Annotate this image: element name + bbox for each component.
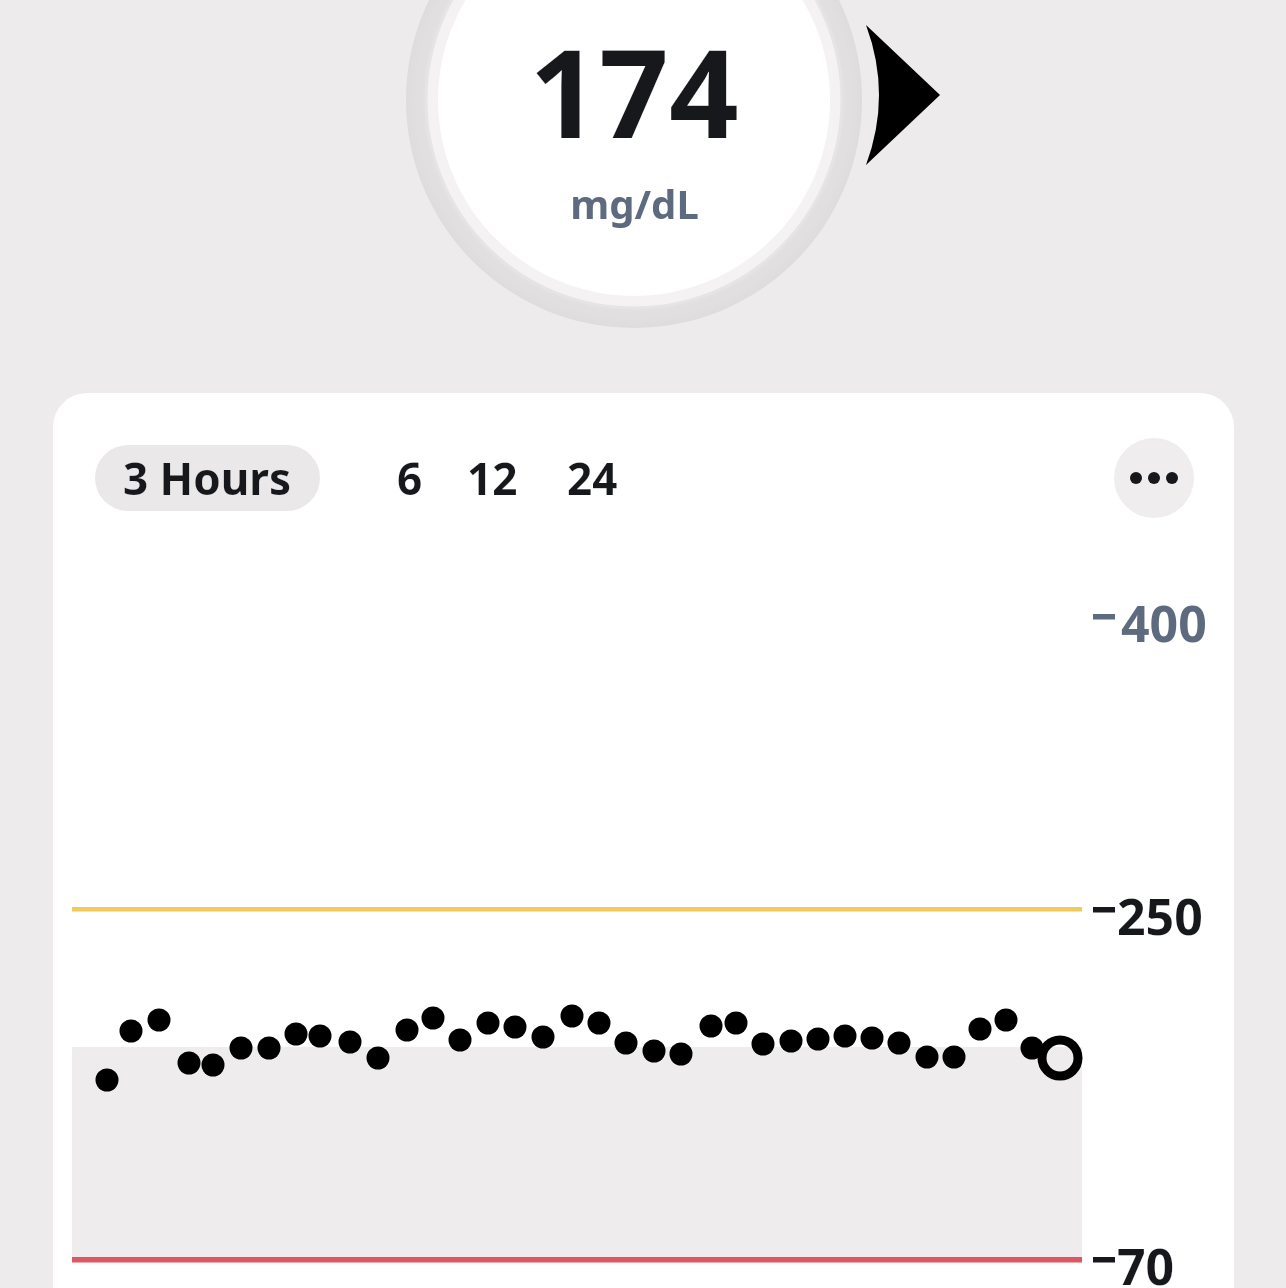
button[interactable]: Glucose 174 mg/dL, rising [434, 8, 834, 230]
staticText: 6 [397, 448, 423, 508]
button[interactable]: More options [1114, 438, 1194, 518]
staticText: 3 Hours [123, 448, 292, 508]
staticText: mg/dL [570, 176, 699, 230]
button[interactable]: 24 [555, 445, 630, 511]
staticText: 174 [529, 8, 739, 174]
staticText: 70 [1117, 1232, 1175, 1288]
button[interactable]: 6 [385, 445, 435, 511]
staticText: 250 [1117, 882, 1203, 950]
staticText: 400 [1121, 589, 1207, 657]
staticText: 12 [467, 448, 518, 508]
staticText: 24 [567, 448, 618, 508]
button[interactable]: 3 Hours [95, 445, 320, 511]
button[interactable]: 12 [455, 445, 530, 511]
